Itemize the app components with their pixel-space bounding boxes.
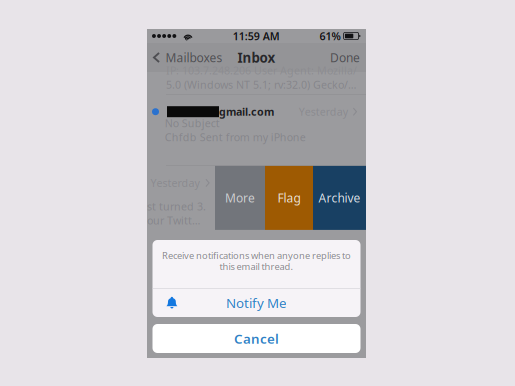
staticText: our Twitt… <box>147 213 200 227</box>
staticText: Inbox <box>237 49 275 66</box>
staticText: Mailboxes <box>165 49 222 65</box>
button[interactable]: Cancel <box>152 324 360 353</box>
staticText: Yesterday <box>150 176 199 190</box>
button[interactable]: More <box>215 166 265 230</box>
staticText: st turned 3. <box>147 199 206 213</box>
button[interactable]: Done <box>324 43 366 72</box>
staticText: Archive <box>318 190 360 206</box>
button[interactable]: Flag <box>265 166 313 230</box>
staticText: Yesterday <box>299 105 348 119</box>
button[interactable]: Mailboxes <box>147 43 227 72</box>
staticText: IP: 103.7.248.206 User Agent: Mozilla/ <box>166 63 357 77</box>
staticText: Done <box>330 49 360 65</box>
staticText: this email thread. <box>219 260 293 273</box>
staticText: Receive notifications when anyone replie… <box>162 249 351 262</box>
button[interactable]: Archive <box>313 166 366 230</box>
staticText: More <box>225 190 255 206</box>
staticText: 11:59 AM <box>233 29 280 43</box>
staticText: 61% <box>320 29 341 43</box>
button[interactable]: gmail.com <box>147 95 366 165</box>
staticText: Notify Me <box>226 294 287 312</box>
staticText: 5.0 (Windows NT 5.1; rv:32.0) Gecko/… <box>166 77 356 92</box>
staticText: Cancel <box>234 330 279 347</box>
staticText: gmail.com <box>219 105 274 119</box>
staticText: Flag <box>277 190 300 206</box>
button[interactable]: Notify Me <box>152 289 360 317</box>
staticText: No Subject <box>165 116 220 130</box>
staticText: Chfdb Sent from my iPhone <box>165 130 306 144</box>
